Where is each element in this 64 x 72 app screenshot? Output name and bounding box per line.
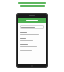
button[interactable]: [0, 2, 64, 7]
button[interactable]: [20, 50, 44, 51]
button[interactable]: [20, 32, 44, 35]
button[interactable]: [20, 44, 44, 47]
button[interactable]: App bar: [18, 18, 46, 23]
button[interactable]: [20, 25, 44, 29]
button[interactable]: [20, 38, 44, 41]
